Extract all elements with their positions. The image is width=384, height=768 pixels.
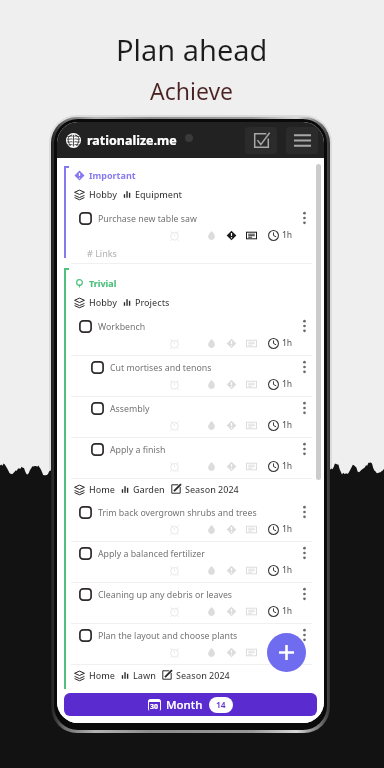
- button[interactable]: Cut mortises and tenons: [57, 356, 324, 396]
- staticText: 1h: [282, 523, 293, 535]
- button[interactable]: Apply a balanced fertilizer: [57, 542, 324, 582]
- button[interactable]: Trivial: [74, 277, 324, 289]
- staticText: 1h: [282, 605, 293, 617]
- button[interactable]: More options: [298, 586, 311, 602]
- button[interactable]: More options: [298, 400, 311, 416]
- staticText: 1h: [282, 646, 293, 658]
- staticText: # Links: [87, 247, 117, 259]
- staticText: Purchase new table saw: [98, 213, 197, 225]
- button[interactable]: Important: [74, 169, 324, 181]
- button[interactable]: Apply a finish: [57, 438, 324, 478]
- staticText: Plan the layout and choose plants: [98, 630, 238, 642]
- staticText: Cut mortises and tenons: [110, 362, 212, 374]
- button[interactable]: Plan the layout and choose plants: [57, 624, 324, 664]
- button[interactable]: Hobby: [74, 188, 324, 200]
- button[interactable]: More options: [298, 441, 311, 457]
- staticText: Workbench: [98, 321, 146, 333]
- staticText: Hobby: [89, 296, 117, 308]
- staticText: Home: [89, 483, 115, 495]
- staticText: Lawn: [133, 669, 156, 681]
- button[interactable]: More options: [298, 504, 311, 520]
- staticText: Apply a finish: [110, 444, 166, 456]
- button[interactable]: Assembly: [57, 397, 324, 437]
- staticText: Projects: [135, 296, 170, 308]
- staticText: Home: [89, 669, 115, 681]
- staticText: 1h: [282, 460, 293, 472]
- button[interactable]: Add task: [267, 633, 306, 672]
- staticText: 30: [150, 702, 159, 711]
- button[interactable]: Trim back overgrown shrubs and trees: [57, 501, 324, 541]
- staticText: Important: [89, 169, 136, 181]
- staticText: Hobby: [89, 188, 117, 200]
- button[interactable]: Cleaning up any debris or leaves: [57, 583, 324, 623]
- staticText: Garden: [133, 483, 165, 495]
- button[interactable]: Hobby: [74, 296, 324, 308]
- staticText: Month: [166, 697, 203, 713]
- button[interactable]: Home: [74, 669, 324, 681]
- button[interactable]: More options: [298, 210, 311, 226]
- staticText: 1h: [282, 419, 293, 431]
- button[interactable]: Tasks: [245, 127, 277, 154]
- staticText: 1h: [282, 229, 293, 241]
- staticText: Plan ahead: [116, 30, 268, 69]
- staticText: rationalize.me: [87, 132, 177, 149]
- staticText: Apply a balanced fertilizer: [98, 548, 205, 560]
- staticText: Trivial: [89, 277, 117, 289]
- button[interactable]: Purchase new table saw: [57, 207, 324, 247]
- staticText: 14: [216, 699, 226, 711]
- staticText: Season 2024: [176, 669, 230, 681]
- staticText: 1h: [282, 378, 293, 390]
- staticText: Equipment: [135, 188, 183, 200]
- staticText: Season 2024: [185, 483, 239, 495]
- staticText: Assembly: [110, 403, 150, 415]
- button[interactable]: 30: [64, 693, 317, 716]
- staticText: 1h: [282, 337, 293, 349]
- button[interactable]: More options: [298, 627, 311, 643]
- button[interactable]: More options: [298, 318, 311, 334]
- staticText: Achieve: [150, 75, 234, 106]
- staticText: Cleaning up any debris or leaves: [98, 589, 233, 601]
- button[interactable]: More options: [298, 359, 311, 375]
- staticText: 1h: [282, 564, 293, 576]
- button[interactable]: Workbench: [57, 315, 324, 355]
- button[interactable]: More options: [298, 545, 311, 561]
- button[interactable]: Menu: [286, 127, 318, 154]
- button[interactable]: Home: [74, 483, 324, 495]
- staticText: Trim back overgrown shrubs and trees: [98, 507, 257, 519]
